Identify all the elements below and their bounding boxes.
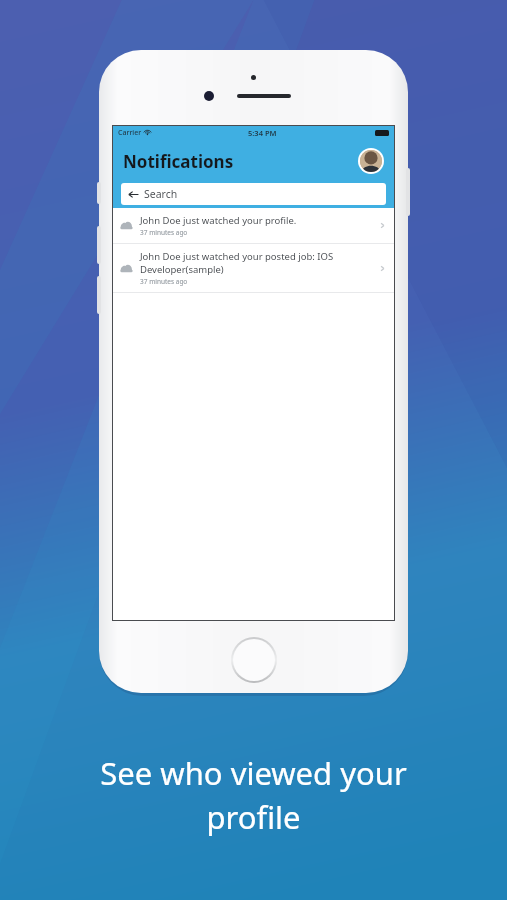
staticText: Notifications (123, 150, 234, 173)
button[interactable]: John Doe just watched your profile. (113, 208, 394, 243)
staticText: Developer(sample) (140, 263, 224, 276)
staticText: profile (206, 796, 301, 838)
staticText: John Doe just watched your posted job: I… (140, 250, 334, 263)
staticText: John Doe just watched your profile. (140, 214, 297, 227)
staticText: See who viewed your (100, 752, 407, 794)
staticText: 5:34 PM (248, 128, 277, 138)
button[interactable]: Profile (358, 148, 384, 174)
button[interactable]: John Doe just watched your posted job: I… (113, 244, 394, 292)
staticText: 37 minutes ago (140, 277, 188, 286)
staticText: Search (144, 187, 178, 201)
button[interactable]: Search (121, 183, 386, 205)
staticText: Carrier (118, 128, 142, 138)
staticText: 37 minutes ago (140, 228, 188, 237)
